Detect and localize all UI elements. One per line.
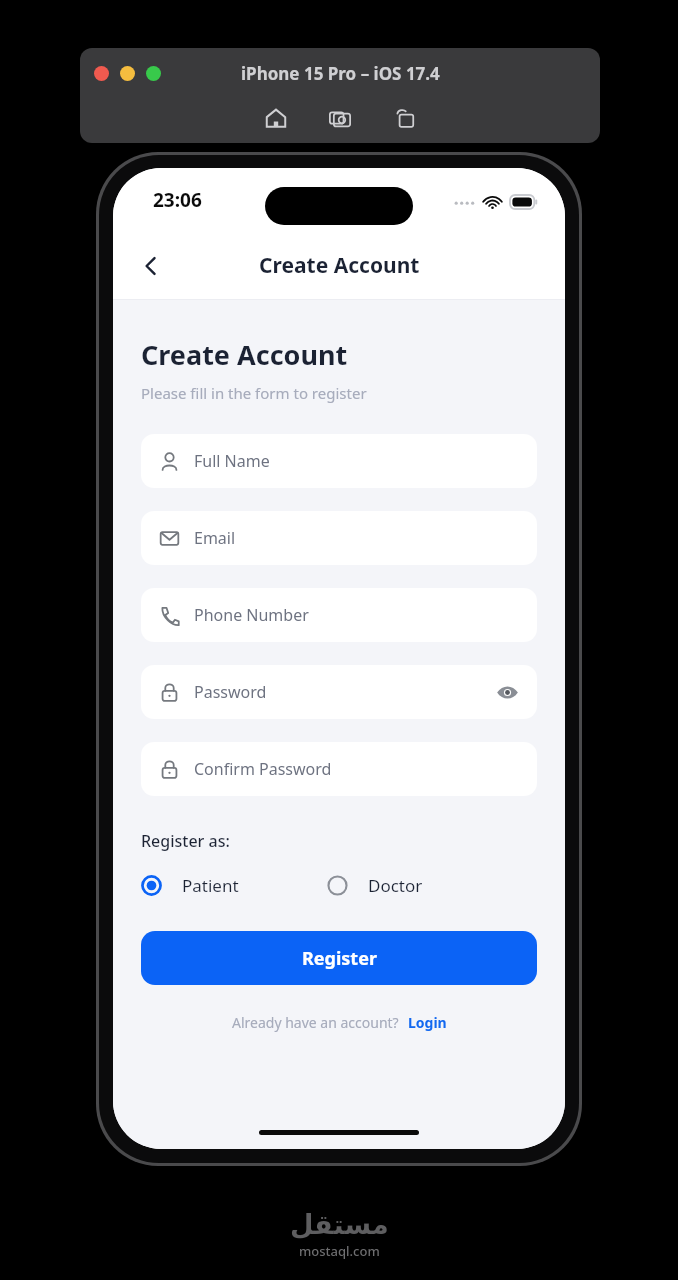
button[interactable]: Patient bbox=[141, 874, 239, 897]
button[interactable]: Email bbox=[141, 511, 537, 565]
staticText: Password bbox=[194, 681, 494, 703]
button[interactable]: Confirm Password bbox=[141, 742, 537, 796]
staticText: Phone Number bbox=[194, 604, 520, 626]
button[interactable]: Password bbox=[141, 665, 537, 719]
button[interactable]: Phone Number bbox=[141, 588, 537, 642]
staticText: Create Account bbox=[141, 336, 348, 373]
staticText: Email bbox=[194, 527, 520, 549]
staticText: iPhone 15 Pro – iOS 17.4 bbox=[241, 62, 440, 85]
button[interactable]: Back bbox=[129, 244, 173, 288]
staticText: 23:06 bbox=[153, 187, 202, 213]
staticText: Doctor bbox=[368, 874, 423, 897]
button[interactable]: Login bbox=[408, 1013, 447, 1032]
button[interactable] bbox=[94, 66, 109, 81]
button[interactable] bbox=[146, 66, 161, 81]
button[interactable]: Register bbox=[141, 931, 537, 985]
button[interactable]: Full Name bbox=[141, 434, 537, 488]
button[interactable]: Rotate bbox=[384, 98, 424, 138]
staticText: Confirm Password bbox=[194, 758, 520, 780]
staticText: Register as: bbox=[141, 830, 230, 852]
staticText: Login bbox=[408, 1013, 447, 1032]
staticText: Already have an account? bbox=[232, 1013, 399, 1032]
button[interactable]: Screenshot bbox=[320, 98, 360, 138]
staticText: Patient bbox=[182, 874, 239, 897]
staticText: mostaql.com bbox=[299, 1242, 380, 1260]
staticText: Full Name bbox=[194, 450, 520, 472]
staticText: Register bbox=[302, 946, 377, 971]
staticText: Please fill in the form to register bbox=[141, 383, 367, 403]
button[interactable]: Home bbox=[256, 98, 296, 138]
button[interactable]: Doctor bbox=[327, 874, 423, 897]
button[interactable]: Show password bbox=[494, 679, 520, 705]
staticText: Create Account bbox=[259, 251, 420, 280]
staticText: مستقل bbox=[290, 1209, 389, 1240]
button[interactable] bbox=[120, 66, 135, 81]
